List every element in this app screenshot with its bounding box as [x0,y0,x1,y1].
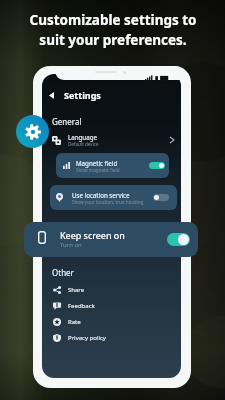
button[interactable]: Switch on [167,233,190,246]
staticText: Share [68,286,85,294]
staticText: General [52,116,82,127]
button[interactable]: Share [42,283,181,296]
staticText: Customizable settings to [29,11,197,29]
button[interactable]: Settings [16,115,49,148]
button[interactable]: Privacy policy [42,331,181,344]
other: Back [47,91,56,100]
staticText: Other [52,267,74,278]
button[interactable]: Magnetic field [56,153,169,178]
button[interactable]: Rate [42,315,181,328]
staticText: Show your location, true heading [72,199,144,205]
staticText: Feedback [68,302,95,310]
staticText: Turn on [60,241,82,249]
button[interactable]: Switch on [149,162,165,169]
button[interactable]: Back [42,87,181,103]
staticText: Default device [68,141,99,147]
staticText: Language [68,133,97,141]
staticText: Privacy policy [68,334,106,342]
staticText: Show magnetic field [76,167,120,173]
staticText: Settings [64,89,101,101]
button[interactable]: Feedback [42,299,181,312]
staticText: Keep screen on [60,229,125,241]
staticText: Magnetic field [76,159,118,167]
staticText: Rate [68,318,81,326]
button[interactable]: Open language [166,134,178,146]
staticText: Use location service [72,191,130,199]
button[interactable]: Use location service [50,185,177,210]
staticText: suit your preferences. [39,31,187,49]
button[interactable]: Switch off [153,194,169,201]
button[interactable]: Keep screen on [24,222,198,257]
